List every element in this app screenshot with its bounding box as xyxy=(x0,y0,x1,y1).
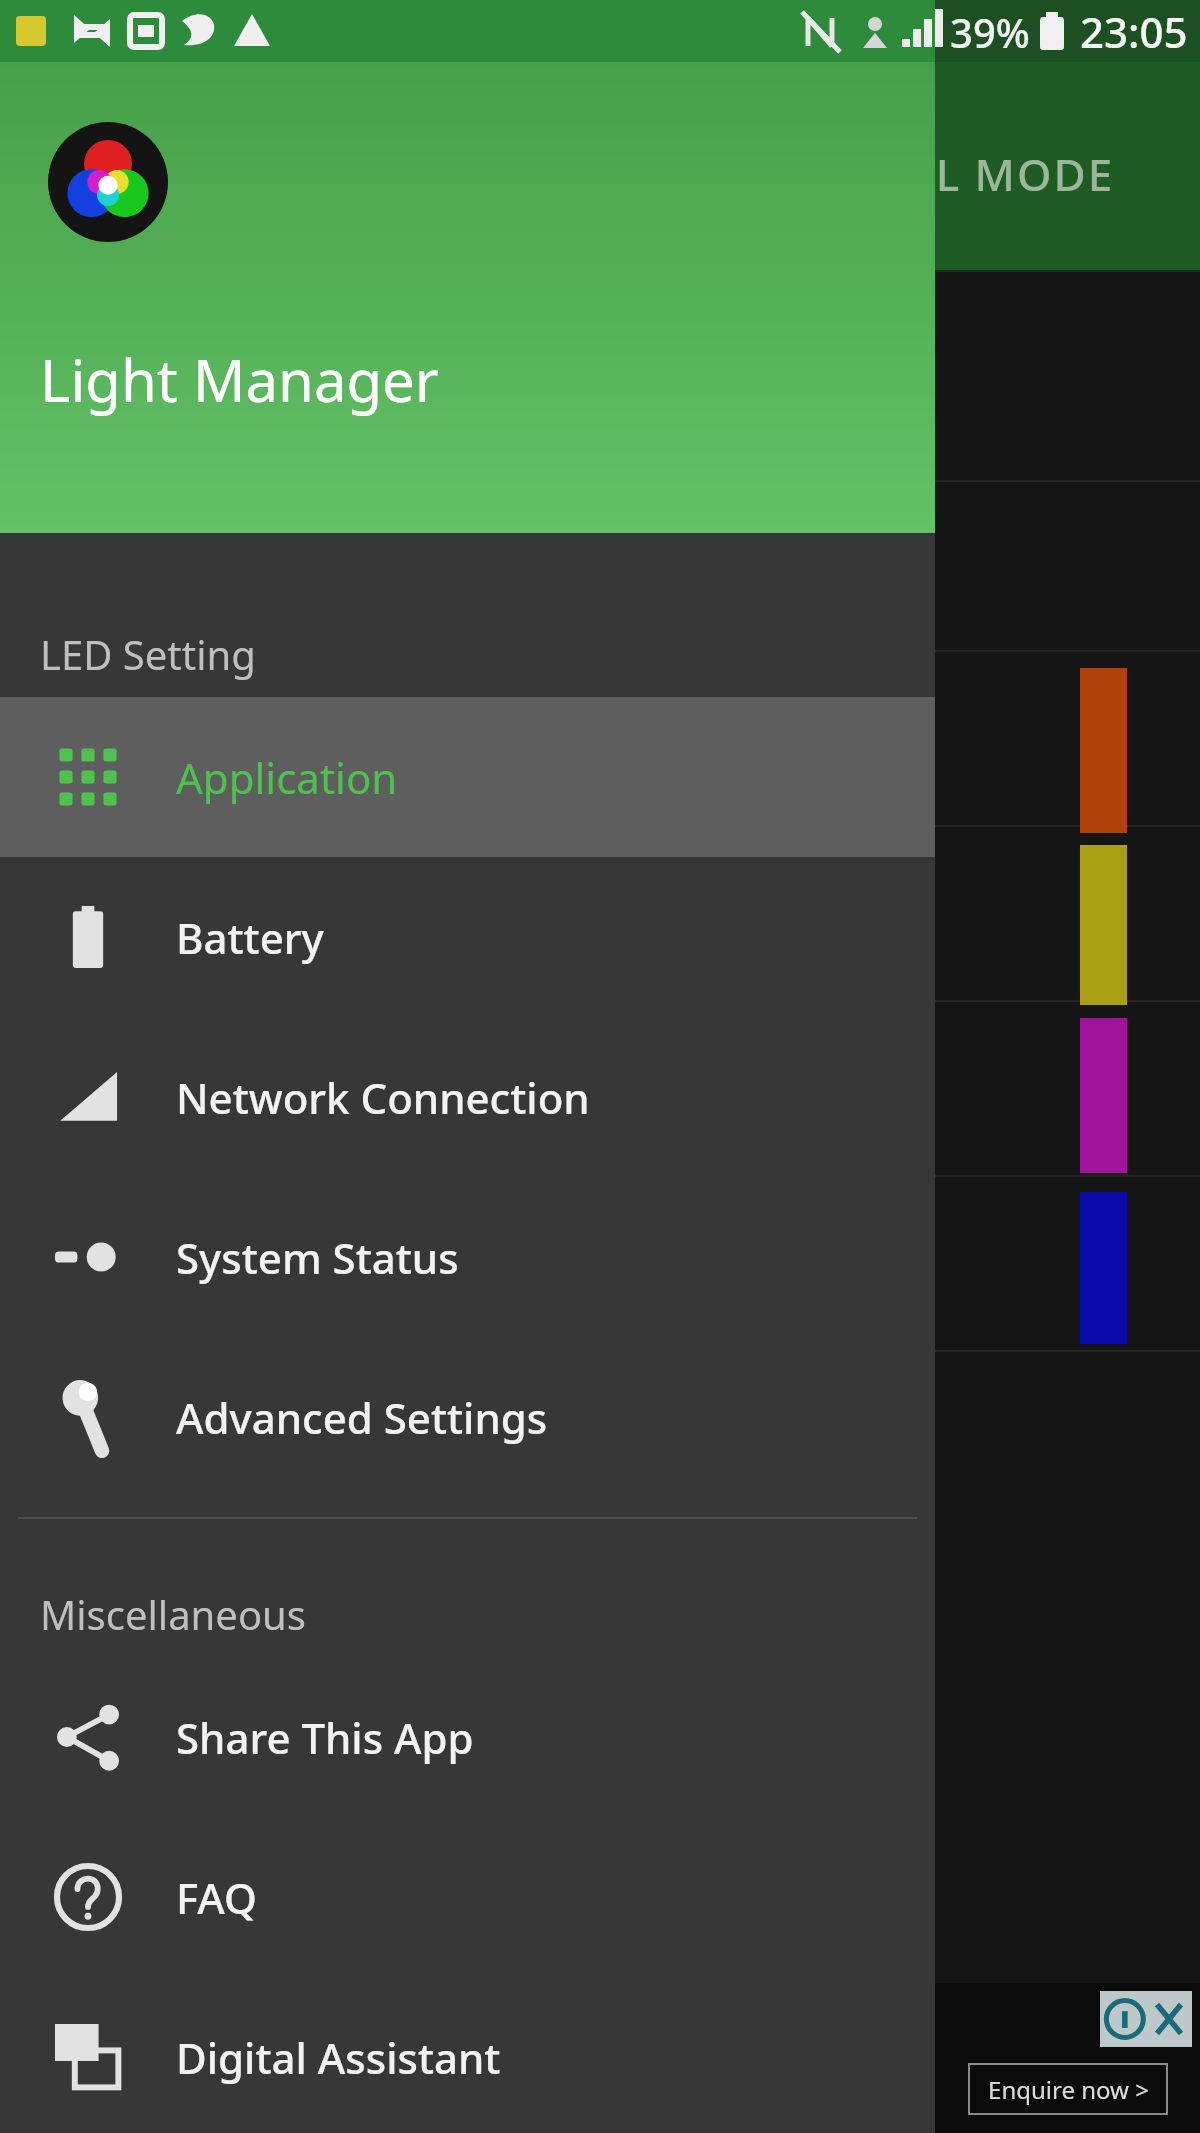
button[interactable]: Digital Assistant xyxy=(0,1977,935,2133)
staticText: Advanced Settings xyxy=(176,1389,548,1446)
staticText: Miscellaneous xyxy=(40,1587,306,1641)
button[interactable]: Share This App xyxy=(0,1657,935,1817)
button[interactable]: Ad choices xyxy=(0,1983,1200,2133)
button[interactable]: Enquire now > xyxy=(968,2063,1168,2115)
button[interactable]: Application xyxy=(0,697,935,857)
staticText: Battery xyxy=(176,909,324,966)
button[interactable]: Battery xyxy=(0,857,935,1017)
staticText: 23:05 xyxy=(1080,3,1188,60)
staticText: Digital Assistant xyxy=(176,2029,501,2086)
button[interactable]: Network Connection xyxy=(0,1017,935,1177)
staticText: Network Connection xyxy=(176,1069,590,1126)
button[interactable]: System Status xyxy=(0,1177,935,1337)
staticText: 39% xyxy=(950,5,1030,59)
button[interactable]: FAQ xyxy=(0,1817,935,1977)
button[interactable]: Ad choices xyxy=(1100,1991,1192,2047)
staticText: Light Manager xyxy=(40,340,439,419)
staticText: Share This App xyxy=(176,1709,474,1766)
staticText: FAQ xyxy=(176,1869,257,1926)
staticText: Application xyxy=(176,749,398,806)
button[interactable]: Advanced Settings xyxy=(0,1337,935,1497)
staticText: System Status xyxy=(176,1229,459,1286)
staticText: LED Setting xyxy=(40,627,256,681)
staticText: NORMAL MODE xyxy=(760,144,1115,204)
staticText: Enquire now > xyxy=(988,2073,1149,2106)
